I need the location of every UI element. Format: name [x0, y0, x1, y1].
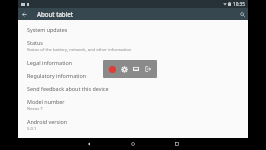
button[interactable]: System updates — [27, 23, 242, 36]
button[interactable]: Exit — [142, 63, 154, 75]
button[interactable]: Legal information — [27, 56, 242, 69]
button[interactable]: Record — [106, 63, 118, 75]
button[interactable]: Settings — [118, 63, 130, 75]
staticText: Status — [27, 39, 43, 46]
button[interactable]: Send feedback about this device — [27, 82, 242, 95]
button[interactable]: Back — [77, 138, 101, 150]
button[interactable]: Regulatory information — [27, 69, 242, 82]
button[interactable]: Recent apps — [165, 138, 189, 150]
button[interactable]: Navigate up — [18, 8, 30, 20]
staticText: Send feedback about this device — [27, 85, 109, 92]
staticText: Android version — [27, 118, 68, 125]
staticText: Nexus 7 — [27, 106, 43, 112]
staticText: About tablet — [37, 10, 73, 18]
staticText: 5.0.1 — [27, 126, 37, 132]
button[interactable]: Status — [27, 36, 242, 56]
button[interactable]: Model number — [27, 95, 242, 115]
staticText: Regulatory information — [27, 72, 87, 79]
button[interactable]: Home — [121, 138, 145, 150]
button[interactable]: Android version — [27, 115, 242, 135]
button[interactable]: Search — [236, 8, 248, 20]
staticText: Model number — [27, 98, 65, 105]
staticText: Status of the battery, network, and othe… — [27, 47, 132, 53]
staticText: Legal information — [27, 59, 73, 66]
button[interactable]: Screenshot — [130, 63, 142, 75]
staticText: 10:35 — [233, 1, 245, 7]
staticText: System updates — [27, 26, 68, 33]
button[interactable]: Kernel version — [27, 135, 242, 148]
